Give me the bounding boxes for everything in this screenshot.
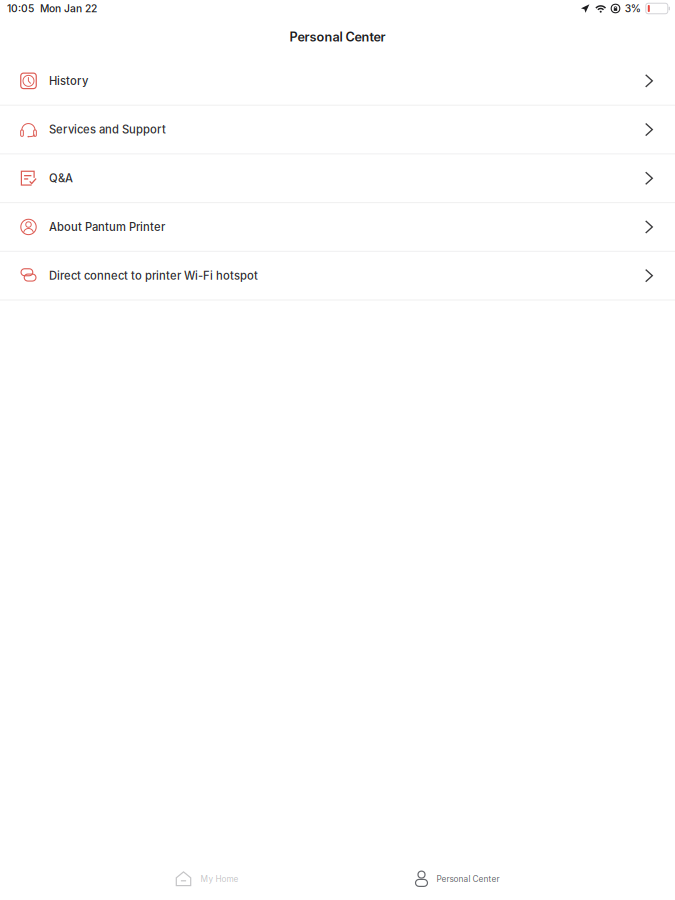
staticText: Q&A xyxy=(49,171,73,185)
button[interactable]: About Pantum Printer xyxy=(0,203,675,252)
staticText: 3% xyxy=(625,2,641,15)
staticText: Services and Support xyxy=(49,123,166,136)
staticText: About Pantum Printer xyxy=(49,220,165,234)
staticText: History xyxy=(49,74,88,88)
staticText: Personal Center xyxy=(436,874,499,884)
button[interactable]: Services and Support xyxy=(0,106,675,154)
button[interactable]: Q&A xyxy=(0,154,675,203)
staticText: 10:05 xyxy=(7,2,34,15)
staticText: Personal Center xyxy=(289,29,385,45)
staticText: My Home xyxy=(200,874,238,884)
button[interactable]: Personal Center xyxy=(413,858,499,900)
staticText: Direct connect to printer Wi-Fi hotspot xyxy=(49,269,258,282)
button[interactable]: Direct connect to printer Wi-Fi hotspot xyxy=(0,252,675,300)
button[interactable]: My Home xyxy=(175,858,238,900)
button[interactable]: History xyxy=(0,57,675,106)
staticText: Mon Jan 22 xyxy=(40,2,97,15)
